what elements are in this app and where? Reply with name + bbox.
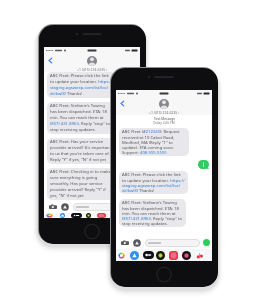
button[interactable]: App: [169, 251, 178, 260]
staticText: ABC Fleet: Please click the link to upda…: [50, 73, 113, 97]
button[interactable]: ABC Fleet: Has your service provider arr…: [47, 138, 115, 164]
button[interactable]: App: [182, 251, 191, 260]
staticText: +1 (415) 214-6235 ›: [149, 110, 180, 115]
button[interactable]: Photos: [45, 213, 54, 218]
button[interactable]: ABC Fleet: Checking in to make sure ever…: [47, 168, 115, 200]
button[interactable]: Camera: [121, 239, 129, 247]
button[interactable]: [198, 160, 209, 169]
button[interactable]: Send: [203, 239, 210, 246]
staticText: Text Message: [154, 117, 175, 121]
button[interactable]: ABC Fleet: Please click the link to upda…: [47, 72, 116, 98]
button[interactable]: App: [84, 213, 93, 218]
button[interactable]: App: [110, 213, 119, 218]
button[interactable]: App Store: [58, 213, 67, 218]
button[interactable]: Contact avatar: [159, 99, 169, 109]
button[interactable]: Apple Pay: [71, 213, 82, 218]
staticText: ABC Fleet (#212345): Request received at…: [122, 129, 186, 155]
button[interactable]: ABC Fleet: Stefanie's Towing has been di…: [119, 199, 186, 227]
staticText: Today 2:46 PM: [153, 121, 175, 125]
button[interactable]: App Store: [61, 203, 69, 211]
button[interactable]: Send: [131, 203, 138, 210]
staticText: ABC Fleet: Please click the link to upda…: [122, 172, 185, 193]
button[interactable]: [145, 239, 200, 247]
button[interactable]: Music: [195, 251, 204, 260]
button[interactable]: Back: [118, 99, 127, 108]
button[interactable]: Photos: [117, 251, 126, 260]
staticText: +1 (415) 214-6235 ›: [77, 67, 108, 72]
staticText: ABC Fleet: Stefanie's Towing has been di…: [50, 103, 111, 133]
button[interactable]: ABC Fleet: Please click the link to upda…: [119, 171, 188, 194]
button[interactable]: Contact avatar: [87, 56, 97, 66]
button[interactable]: ABC Fleet (#212345): Request received at…: [119, 128, 189, 156]
button[interactable]: App: [97, 213, 106, 218]
button[interactable]: ABC Fleet: Stefanie's Towing has been di…: [47, 102, 114, 134]
staticText: ABC Fleet: Checking in to make sure ever…: [50, 169, 112, 199]
button[interactable]: Back: [46, 56, 55, 65]
button[interactable]: App: [156, 251, 165, 260]
button[interactable]: App Store: [130, 251, 139, 260]
button[interactable]: App Store: [133, 239, 141, 247]
button[interactable]: Apple Pay: [143, 251, 154, 259]
staticText: ABC Fleet: Stefanie's Towing has been di…: [122, 200, 183, 226]
staticText: ABC Fleet: Has your service provider arr…: [50, 139, 112, 163]
button[interactable]: Music: [123, 213, 132, 218]
button[interactable]: Camera: [49, 203, 57, 211]
button[interactable]: [73, 203, 128, 211]
